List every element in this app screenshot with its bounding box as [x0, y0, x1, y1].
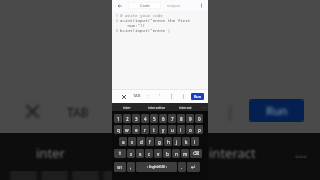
button[interactable]: Backspace [190, 149, 202, 158]
button[interactable]: 8 [177, 114, 185, 123]
button[interactable]: m [181, 149, 189, 158]
staticText: Run [194, 94, 201, 99]
button[interactable]: Close [119, 92, 128, 101]
staticText: z [130, 151, 133, 157]
button[interactable]: , [127, 162, 135, 172]
staticText: ⋯ [202, 105, 206, 110]
button[interactable]: 7 [168, 114, 176, 123]
button[interactable]: t [150, 125, 158, 134]
button[interactable]: h [164, 137, 172, 146]
button[interactable]: 9 [186, 114, 194, 123]
staticText: ↵ [191, 164, 196, 170]
button[interactable]: a [119, 137, 127, 146]
button[interactable]: ' [154, 89, 166, 103]
button[interactable]: interact [171, 103, 200, 111]
button[interactable]: i [177, 125, 185, 134]
staticText: 5 [153, 116, 156, 122]
button[interactable]: ( [178, 89, 190, 103]
staticText: ⌫ [193, 151, 200, 156]
button[interactable]: j [173, 137, 181, 146]
button[interactable]: 1 [114, 114, 122, 123]
staticText: a=int(input("enter the first [120, 18, 191, 23]
staticText: # write your code [120, 13, 163, 18]
button[interactable]: b [163, 149, 171, 158]
staticText: TAB [133, 93, 141, 99]
button[interactable]: 5 [150, 114, 158, 123]
button[interactable]: x [136, 149, 144, 158]
staticText: b=int(input("enter | [120, 28, 171, 33]
staticText: 0 [198, 116, 201, 122]
staticText: num:")) [120, 23, 146, 28]
button[interactable]: Run [191, 93, 204, 100]
button[interactable]: y [159, 125, 167, 134]
staticText: 3 [114, 28, 118, 33]
button[interactable]: e [132, 125, 140, 134]
staticText: f [149, 139, 151, 145]
button[interactable]: z [127, 149, 135, 158]
staticText: r [144, 127, 146, 133]
button[interactable]: Code [128, 2, 161, 9]
button[interactable]: w [123, 125, 131, 134]
staticText: i [180, 127, 182, 133]
button[interactable]: [ [166, 89, 178, 103]
button[interactable]: u [168, 125, 176, 134]
button[interactable]: ‹ English(US) › [136, 162, 177, 172]
staticText: h [167, 139, 170, 145]
staticText: ··· [295, 146, 308, 158]
staticText: t [153, 127, 155, 133]
button[interactable]: g [155, 137, 163, 146]
button[interactable]: v [154, 149, 162, 158]
button[interactable]: f [146, 137, 154, 146]
button[interactable]: l [191, 137, 199, 146]
button[interactable]: 2 [123, 114, 131, 123]
button[interactable]: 6 [159, 114, 167, 123]
staticText: 3 [135, 116, 138, 122]
staticText: 6 [162, 116, 165, 122]
button[interactable]: p [195, 125, 203, 134]
button[interactable]: inter [112, 103, 142, 111]
staticText: : [147, 93, 149, 99]
staticText: !#1 [117, 165, 123, 170]
button[interactable]: n [172, 149, 180, 158]
button[interactable]: More options [197, 1, 206, 10]
button[interactable]: Shift [114, 149, 126, 158]
button[interactable]: 3 [132, 114, 140, 123]
button[interactable]: : [142, 89, 154, 103]
staticText: interact [209, 144, 256, 160]
staticText: k [185, 139, 188, 145]
staticText: e [135, 127, 138, 133]
button[interactable]: d [137, 137, 145, 146]
staticText: 4 [144, 116, 147, 122]
button[interactable]: 4 [141, 114, 149, 123]
button[interactable]: !#1 [114, 162, 126, 172]
staticText: ‹ English(US) › [147, 165, 167, 169]
button[interactable]: o [186, 125, 194, 134]
button[interactable]: s [128, 137, 136, 146]
staticText: n [175, 151, 178, 157]
staticText: interactive [148, 105, 166, 110]
staticText: l [194, 139, 196, 145]
button[interactable]: . [178, 162, 186, 172]
staticText: 9 [189, 116, 192, 122]
button[interactable]: q [114, 125, 122, 134]
button[interactable]: k [182, 137, 190, 146]
staticText: output [167, 3, 181, 9]
staticText: o [189, 127, 192, 133]
staticText: ( [228, 100, 234, 123]
staticText: p [198, 127, 201, 133]
button[interactable]: c [145, 149, 153, 158]
button[interactable]: r [141, 125, 149, 134]
button[interactable]: interactive [142, 103, 171, 111]
button[interactable]: Back [116, 2, 124, 10]
button[interactable]: More suggestions [200, 103, 208, 111]
staticText: q [117, 127, 120, 133]
staticText: s [131, 139, 134, 145]
staticText: w [125, 127, 129, 133]
button[interactable]: Enter [187, 162, 200, 172]
staticText: inter [123, 105, 131, 110]
button[interactable]: TAB [132, 89, 142, 103]
button[interactable]: 0 [195, 114, 203, 123]
staticText: b [166, 151, 169, 157]
button[interactable]: output [161, 2, 187, 9]
